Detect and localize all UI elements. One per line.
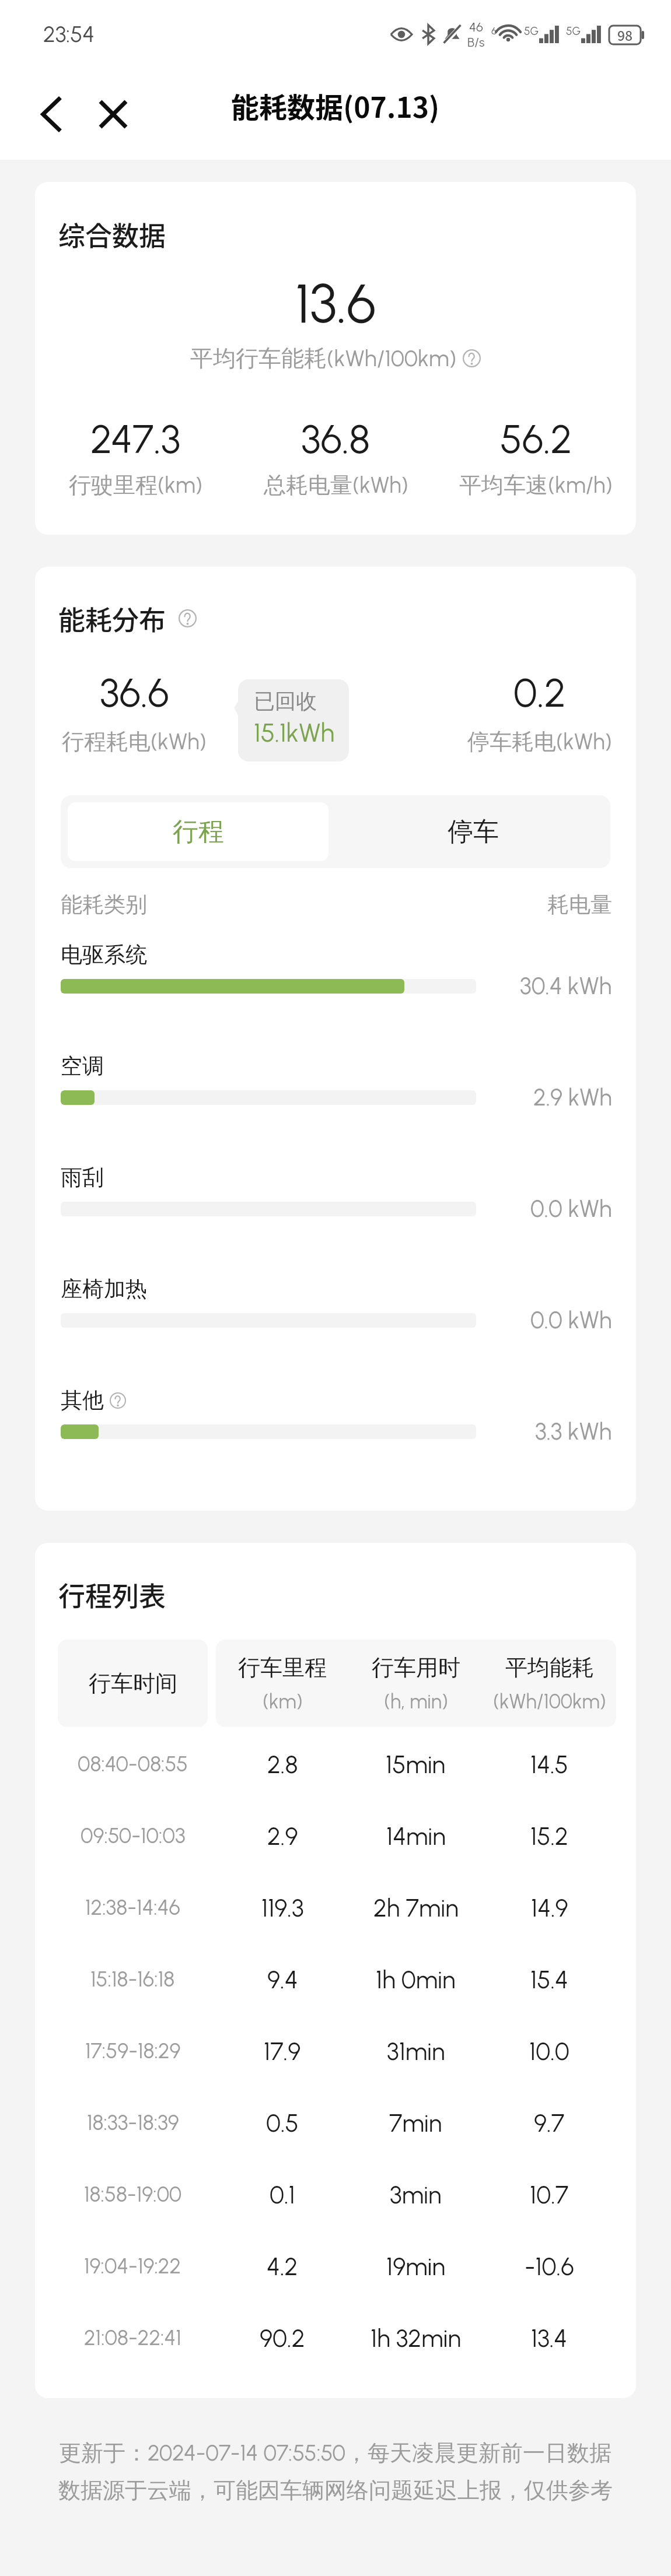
- staticText: 23:54: [43, 21, 95, 48]
- staticText: 3.3 kWh: [535, 1417, 612, 1445]
- staticText: 座椅加热: [61, 1275, 147, 1303]
- staticText: 0.2: [513, 669, 566, 717]
- staticText: 10.7: [530, 2180, 569, 2209]
- staticText: 0.0 kWh: [530, 1195, 612, 1223]
- staticText: 3min: [390, 2180, 442, 2209]
- staticText: 10.0: [529, 2037, 569, 2066]
- staticText: 18:33-18:39: [87, 2110, 179, 2135]
- button[interactable]: 09:50-10:03: [58, 1800, 616, 1872]
- button[interactable]: 停车: [335, 795, 610, 868]
- staticText: 行车时间: [89, 1669, 177, 1697]
- button[interactable]: 19:04-19:22: [58, 2230, 616, 2302]
- staticText: 更新于：2024-07-14 07:55:50，每天凌晨更新前一日数据: [59, 2439, 612, 2467]
- staticText: 09:50-10:03: [81, 1823, 186, 1848]
- staticText: 行程列表: [58, 1575, 166, 1614]
- button[interactable]: 08:40-08:55: [58, 1728, 616, 1800]
- staticText: 行程耗电(kWh): [62, 728, 207, 756]
- staticText: 其他: [61, 1387, 104, 1414]
- staticText: 能耗分布: [58, 599, 166, 638]
- staticText: 17.9: [264, 2037, 301, 2066]
- staticText: 1h 32min: [371, 2324, 461, 2353]
- staticText: 15.1kWh: [254, 717, 335, 748]
- staticText: -10.6: [525, 2252, 574, 2281]
- staticText: 已回收: [254, 688, 317, 714]
- staticText: 2.9 kWh: [533, 1083, 612, 1111]
- staticText: 15.4: [530, 1965, 568, 1994]
- button[interactable]: 12:38-14:46: [58, 1872, 616, 1943]
- staticText: 13.4: [531, 2324, 568, 2353]
- staticText: 119.3: [261, 1893, 304, 1922]
- staticText: (km): [263, 1690, 303, 1714]
- staticText: 耗电量: [547, 891, 612, 918]
- staticText: 12:38-14:46: [85, 1895, 180, 1920]
- staticText: 0.5: [266, 2108, 299, 2138]
- staticText: 总耗电量(kWh): [264, 471, 408, 499]
- staticText: 15:18-16:18: [90, 1967, 175, 1992]
- staticText: 行车用时: [372, 1654, 460, 1682]
- staticText: 5G: [524, 24, 539, 38]
- staticText: 19:04-19:22: [84, 2254, 181, 2279]
- staticText: 19min: [386, 2252, 445, 2281]
- staticText: 31min: [387, 2037, 445, 2066]
- staticText: 停车: [448, 816, 499, 848]
- staticText: 综合数据: [58, 215, 166, 254]
- staticText: 平均能耗: [505, 1654, 594, 1682]
- staticText: 14min: [386, 1822, 446, 1851]
- staticText: 能耗数据(07.13): [231, 85, 440, 126]
- staticText: 数据源于云端，可能因车辆网络问题延迟上报，仅供参考: [58, 2476, 613, 2504]
- staticText: 能耗类别: [61, 891, 147, 918]
- staticText: 6: [491, 24, 497, 37]
- staticText: 247.3: [90, 415, 181, 463]
- staticText: 36.8: [301, 415, 371, 463]
- button[interactable]: 18:33-18:39: [58, 2087, 616, 2159]
- button[interactable]: 21:08-22:41: [58, 2302, 616, 2374]
- staticText: 2.8: [267, 1750, 298, 1779]
- staticText: 空调: [61, 1052, 104, 1080]
- staticText: 36.6: [100, 669, 169, 717]
- staticText: 4.2: [267, 2252, 298, 2281]
- staticText: 停车耗电(kWh): [467, 728, 612, 756]
- staticText: 9.7: [534, 2108, 565, 2138]
- staticText: 21:08-22:41: [84, 2325, 181, 2350]
- staticText: (h, min): [384, 1690, 448, 1714]
- button[interactable]: 关闭: [89, 90, 138, 139]
- staticText: 雨刮: [61, 1164, 104, 1191]
- staticText: 行程: [173, 816, 224, 848]
- staticText: 2h 7min: [373, 1893, 459, 1922]
- staticText: 56.2: [500, 415, 572, 463]
- staticText: 平均行车能耗(kWh/100km): [190, 344, 457, 373]
- staticText: 1h 0min: [376, 1965, 456, 1994]
- staticText: 46: [469, 19, 483, 34]
- staticText: 98: [617, 25, 633, 44]
- staticText: 5G: [566, 24, 581, 38]
- staticText: 08:40-08:55: [78, 1752, 188, 1777]
- button[interactable]: 行程: [68, 802, 328, 861]
- staticText: 14.5: [530, 1750, 568, 1779]
- staticText: 0.0 kWh: [530, 1306, 612, 1334]
- staticText: 18:58-19:00: [84, 2182, 182, 2207]
- staticText: 30.4 kWh: [520, 972, 612, 1000]
- staticText: 15min: [386, 1750, 446, 1779]
- staticText: B/s: [467, 34, 485, 50]
- staticText: 17:59-18:29: [85, 2038, 181, 2063]
- button[interactable]: 18:58-19:00: [58, 2159, 616, 2230]
- staticText: 电驱系统: [61, 941, 147, 968]
- button[interactable]: 17:59-18:29: [58, 2015, 616, 2087]
- staticText: 行驶里程(km): [69, 471, 202, 499]
- staticText: 2.9: [267, 1822, 298, 1851]
- staticText: (kWh/100km): [493, 1690, 606, 1714]
- staticText: 0.1: [270, 2180, 295, 2209]
- button[interactable]: 15:18-16:18: [58, 1943, 616, 2015]
- button[interactable]: 返回: [27, 90, 76, 139]
- staticText: 90.2: [260, 2324, 305, 2353]
- staticText: 平均车速(km/h): [459, 471, 613, 499]
- staticText: 14.9: [531, 1893, 568, 1922]
- staticText: 7min: [389, 2108, 442, 2138]
- staticText: 9.4: [267, 1965, 298, 1994]
- staticText: 行车里程: [238, 1654, 327, 1682]
- staticText: 13.6: [295, 271, 376, 336]
- staticText: 15.2: [530, 1822, 568, 1851]
